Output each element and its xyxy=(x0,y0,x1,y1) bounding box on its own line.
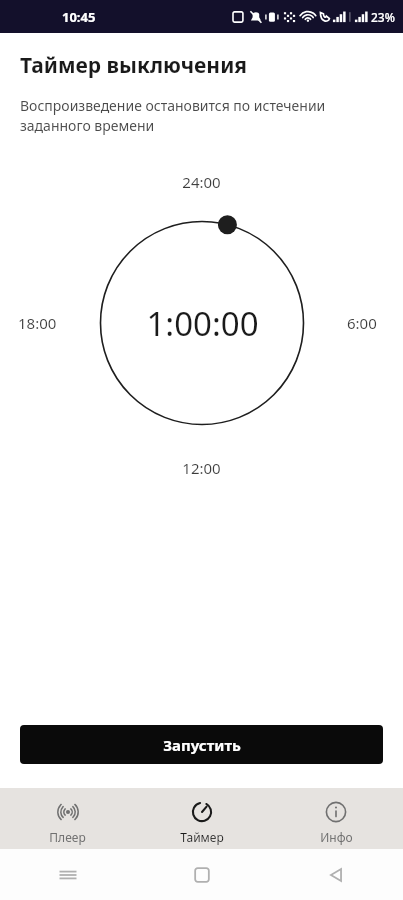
button[interactable]: 1:00:00 xyxy=(87,208,317,438)
staticText: 24:00 xyxy=(182,172,221,192)
staticText: Запустить xyxy=(163,735,241,755)
button[interactable]: Home xyxy=(135,849,269,900)
staticText: 10:45 xyxy=(62,8,96,26)
button[interactable]: Таймер xyxy=(135,792,269,845)
button[interactable]: Запустить xyxy=(20,725,383,764)
button[interactable]: Плеер xyxy=(0,792,135,845)
staticText: 18:00 xyxy=(18,313,57,333)
button[interactable]: Back xyxy=(269,849,403,900)
button[interactable]: Recents xyxy=(0,849,135,900)
staticText: 12:00 xyxy=(182,458,221,478)
staticText: 23% xyxy=(371,9,395,25)
staticText: Плеер xyxy=(49,829,86,845)
button[interactable]: Инфо xyxy=(269,792,403,845)
staticText: Воспроизведение остановится по истечении… xyxy=(20,96,326,136)
staticText: Инфо xyxy=(320,829,353,845)
staticText: Таймер выключения xyxy=(20,51,247,80)
staticText: 6:00 xyxy=(347,313,377,333)
staticText: 1:00:00 xyxy=(146,301,259,346)
staticText: Таймер xyxy=(180,829,224,845)
